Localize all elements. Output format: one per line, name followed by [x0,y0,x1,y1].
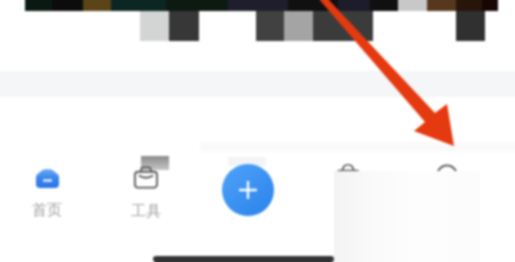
staticText: 首页 [9,201,85,220]
button[interactable]: 工具 [108,166,184,221]
button[interactable]: Profile [434,161,460,187]
button[interactable]: Add [222,164,274,216]
button[interactable]: 首页 [9,169,85,220]
button[interactable]: Cart [335,163,361,188]
staticText: 工具 [108,202,184,221]
